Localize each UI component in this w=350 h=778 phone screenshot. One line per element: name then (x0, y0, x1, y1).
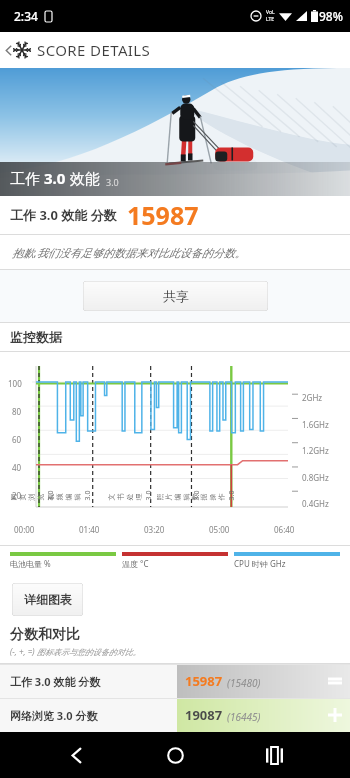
button[interactable]: Back (4, 40, 151, 60)
staticText: 3.0 (106, 176, 119, 188)
staticText: 温度 °C (122, 558, 228, 569)
button[interactable]: Home (152, 732, 198, 778)
staticText: 1.6GHz (302, 419, 329, 430)
staticText: VoL (266, 9, 275, 16)
staticText: 1.2GHz (302, 445, 329, 456)
button[interactable]: 网络浏览 3.0 分数 (0, 698, 350, 732)
staticText: 文书处理 3.0 (106, 488, 153, 500)
staticText: 2:34 (14, 8, 38, 24)
staticText: 视频编辑 3.0 (45, 488, 92, 500)
staticText: 0.4GHz (302, 498, 329, 509)
staticText: SCORE DETAILS (37, 40, 151, 60)
staticText: 80 (12, 406, 22, 417)
staticText: CPU 时钟 GHz (234, 558, 340, 569)
staticText: 19087 (185, 706, 223, 724)
staticText: 00:00 (14, 524, 35, 535)
staticText: 工作 (10, 168, 44, 188)
staticText: 工作 3.0 效能 分数 (10, 206, 117, 224)
button[interactable]: 共享 (83, 281, 268, 311)
staticText: (15480) (227, 676, 261, 690)
staticText: 数据操作 3.0 (189, 488, 236, 500)
button[interactable]: Recents (251, 732, 297, 778)
button[interactable]: 详细图表 (12, 583, 83, 616)
staticText: 抱歉,我们没有足够的数据来对比此设备的分数。 (12, 245, 246, 260)
staticText: 3.0 (44, 168, 66, 188)
staticText: 工作 3.0 效能 分数 (10, 674, 101, 689)
staticText: (16445) (227, 710, 261, 724)
staticText: 05:00 (209, 524, 230, 535)
staticText: 网页浏览 3.0 (8, 488, 55, 500)
staticText: 效能 (66, 168, 100, 188)
staticText: 01:40 (79, 524, 100, 535)
staticText: 98% (319, 8, 343, 24)
staticText: 监控数据 (10, 329, 62, 345)
staticText: 03:20 (144, 524, 165, 535)
staticText: 15987 (185, 672, 223, 690)
staticText: 100 (8, 378, 22, 389)
staticText: 20 (12, 490, 22, 501)
staticText: 60 (12, 434, 22, 445)
staticText: 详细图表 (24, 592, 72, 607)
staticText: 2GHz (302, 392, 323, 403)
button[interactable]: Back (53, 732, 99, 778)
staticText: 电池电量 % (10, 558, 116, 569)
button[interactable]: 工作 3.0 效能 分数 (0, 664, 350, 698)
staticText: 06:40 (274, 524, 295, 535)
staticText: 网络浏览 3.0 分数 (10, 708, 98, 723)
staticText: 0.8GHz (302, 472, 329, 483)
staticText: 15987 (127, 198, 199, 232)
staticText: 照片编辑 3.0 (154, 488, 201, 500)
staticText: 40 (12, 462, 22, 473)
staticText: (-, +, =) 图标表示与您的设备的对比。 (10, 646, 141, 657)
staticText: 分数和对比 (10, 626, 80, 644)
staticText: LTE (266, 16, 275, 23)
staticText: 共享 (163, 288, 189, 304)
